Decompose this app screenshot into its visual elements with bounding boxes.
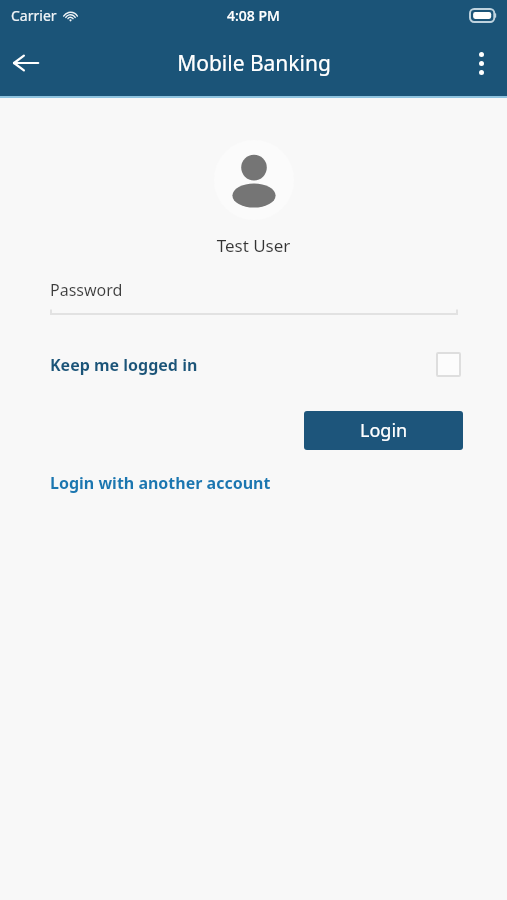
button[interactable]: Back [0,37,52,89]
staticText: Login with another account [50,472,271,494]
staticText: Login [360,418,408,443]
staticText: Keep me logged in [50,354,198,376]
button[interactable]: Login with another account [50,472,271,494]
button[interactable]: Password [50,279,458,315]
staticText: Test User [0,234,507,257]
staticText: Carrier [11,6,57,25]
button[interactable]: Login [304,411,463,450]
staticText: Password [50,279,123,301]
button[interactable]: Keep me logged in [50,352,461,377]
button[interactable]: More options [455,37,507,89]
staticText: 4:08 PM [227,6,280,25]
staticText: Mobile Banking [177,49,331,78]
other: Keep me logged in checkbox [436,352,461,377]
